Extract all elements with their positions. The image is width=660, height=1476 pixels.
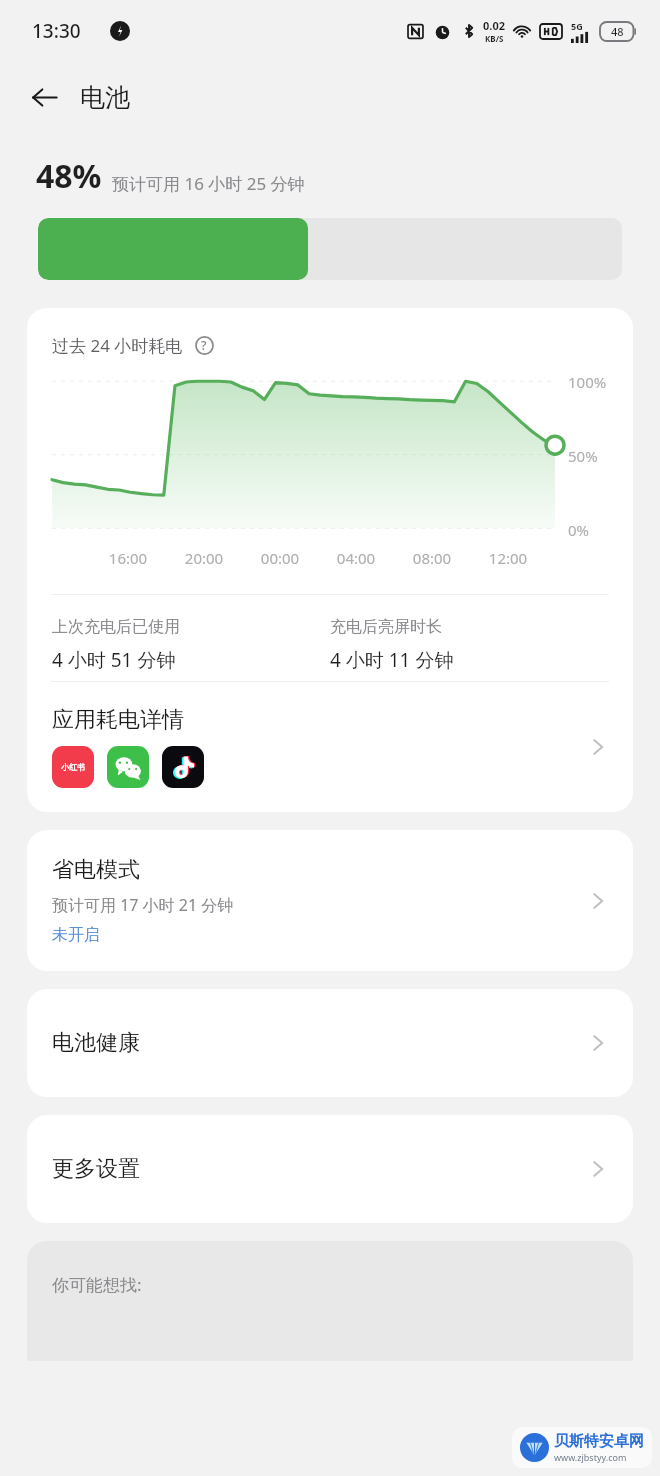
staticText: 未开启 [52, 925, 100, 945]
staticText: 100% [568, 372, 607, 392]
staticText: ? [201, 337, 207, 353]
button[interactable]: 更多设置 [27, 1115, 633, 1223]
staticText: 4 小时 51 分钟 [52, 647, 176, 673]
staticText: www.zjbstyy.com [554, 1451, 627, 1463]
staticText: 预计可用 16 小时 25 分钟 [112, 172, 305, 195]
staticText: 48% [36, 154, 102, 198]
button[interactable]: Help [191, 332, 217, 358]
staticText: 预计可用 17 小时 21 分钟 [52, 894, 234, 916]
staticText: 48 [611, 24, 624, 39]
staticText: 0.02 [483, 18, 505, 33]
button[interactable]: Back [18, 71, 70, 123]
button[interactable]: 电池健康 [27, 989, 633, 1097]
staticText: 04:00 [318, 548, 394, 568]
staticText: 08:00 [394, 548, 470, 568]
staticText: 电池 [80, 82, 130, 113]
button[interactable]: 应用耗电详情 [27, 682, 633, 794]
staticText: 充电后亮屏时长 [330, 617, 442, 637]
staticText: 应用耗电详情 [52, 706, 184, 734]
staticText: 贝斯特安卓网 [554, 1432, 644, 1451]
staticText: 上次充电后已使用 [52, 617, 180, 637]
staticText: 省电模式 [52, 856, 140, 884]
staticText: KB/S [485, 33, 504, 44]
staticText: 20:00 [166, 548, 242, 568]
staticText: 5G [571, 20, 583, 32]
staticText: 小红书 [61, 762, 85, 772]
staticText: 0% [568, 520, 590, 540]
button[interactable]: 省电模式 [27, 830, 633, 971]
staticText: 你可能想找: [52, 1273, 142, 1296]
staticText: 12:00 [470, 548, 546, 568]
staticText: 13:30 [32, 18, 81, 44]
staticText: 过去 24 小时耗电 [52, 334, 183, 357]
staticText: 00:00 [242, 548, 318, 568]
staticText: 50% [568, 446, 598, 466]
staticText: 电池健康 [52, 1029, 585, 1057]
staticText: 更多设置 [52, 1155, 585, 1183]
staticText: 16:00 [90, 548, 166, 568]
staticText: 4 小时 11 分钟 [330, 647, 454, 673]
